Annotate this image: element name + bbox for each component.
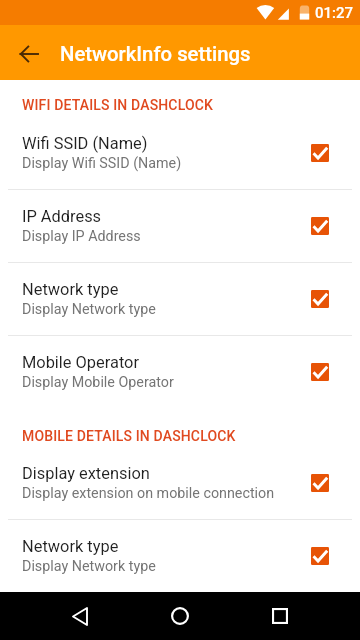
staticText: NetworkInfo settings — [60, 42, 251, 66]
staticText: Network type — [22, 537, 119, 556]
staticText: Display IP Address — [22, 228, 141, 245]
staticText: Display extension — [22, 464, 150, 483]
staticText: Network type — [22, 280, 119, 299]
staticText: Display Mobile Operator — [22, 374, 174, 391]
button[interactable]: Home — [152, 592, 208, 640]
button[interactable]: Network type — [0, 263, 360, 335]
staticText: Mobile Operator — [22, 353, 140, 372]
button[interactable]: Back — [7, 32, 51, 76]
staticText: Display Wifi SSID (Name) — [22, 155, 182, 172]
button[interactable]: Recents — [252, 592, 308, 640]
staticText: IP Address — [22, 207, 102, 226]
button[interactable]: IP Address — [0, 190, 360, 262]
button[interactable]: Mobile Operator — [0, 336, 360, 408]
staticText: WIFI DETAILS IN DASHCLOCK — [22, 97, 213, 113]
button[interactable]: Network type — [0, 520, 360, 592]
staticText: MOBILE DETAILS IN DASHCLOCK — [22, 428, 236, 444]
staticText: 01:27 — [315, 4, 354, 22]
staticText: Display Network type — [22, 301, 156, 318]
staticText: Display extension on mobile connection — [22, 485, 275, 502]
button[interactable]: Wifi SSID (Name) — [0, 117, 360, 189]
button[interactable]: Back — [52, 592, 108, 640]
staticText: Display Network type — [22, 558, 156, 575]
button[interactable]: Display extension — [0, 447, 360, 519]
staticText: Wifi SSID (Name) — [22, 134, 148, 153]
